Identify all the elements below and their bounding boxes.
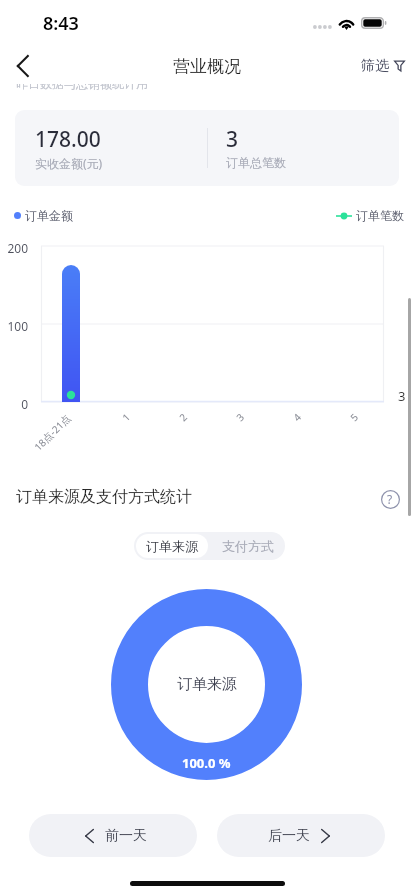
button[interactable]: 前一天 xyxy=(29,814,197,857)
button[interactable]: 后一天 xyxy=(217,814,385,857)
staticText: 4 xyxy=(290,410,304,424)
staticText: 订单笔数 xyxy=(356,208,404,223)
staticText: 2 xyxy=(176,410,190,424)
staticText: 实收金额(元) xyxy=(35,155,103,171)
staticText: 178.00 xyxy=(35,125,101,154)
staticText: 200 xyxy=(0,240,28,256)
button[interactable]: Help xyxy=(377,486,403,512)
staticText: 订单来源及支付方式统计 xyxy=(16,487,192,507)
staticText: 营业概况 xyxy=(173,56,241,77)
button[interactable]: 支付方式 xyxy=(210,534,285,558)
staticText: 3 xyxy=(226,125,239,154)
staticText: 1 xyxy=(119,410,133,424)
staticText: 订单来源 xyxy=(146,538,198,554)
staticText: 昨日数据与总销额统计用 xyxy=(16,84,148,91)
staticText: 0 xyxy=(0,396,28,412)
button[interactable]: 筛选 xyxy=(355,52,411,80)
button[interactable]: Back xyxy=(3,45,45,87)
staticText: 支付方式 xyxy=(222,538,274,554)
staticText: 5 xyxy=(347,410,361,424)
staticText: 订单来源 xyxy=(177,675,237,694)
button[interactable]: 订单来源 xyxy=(136,534,208,558)
staticText: 18点-21点 xyxy=(31,410,74,453)
staticText: ? xyxy=(387,491,393,507)
staticText: 后一天 xyxy=(268,827,310,845)
staticText: 筛选 xyxy=(361,57,389,75)
staticText: 8:43 xyxy=(43,11,79,36)
staticText: 前一天 xyxy=(105,827,147,845)
staticText: 订单总笔数 xyxy=(226,155,286,170)
staticText: 100.0 % xyxy=(182,754,231,772)
staticText: 订单金额 xyxy=(25,208,73,223)
staticText: 3 xyxy=(233,410,247,424)
staticText: 3 xyxy=(398,387,406,405)
staticText: 100 xyxy=(0,318,28,334)
